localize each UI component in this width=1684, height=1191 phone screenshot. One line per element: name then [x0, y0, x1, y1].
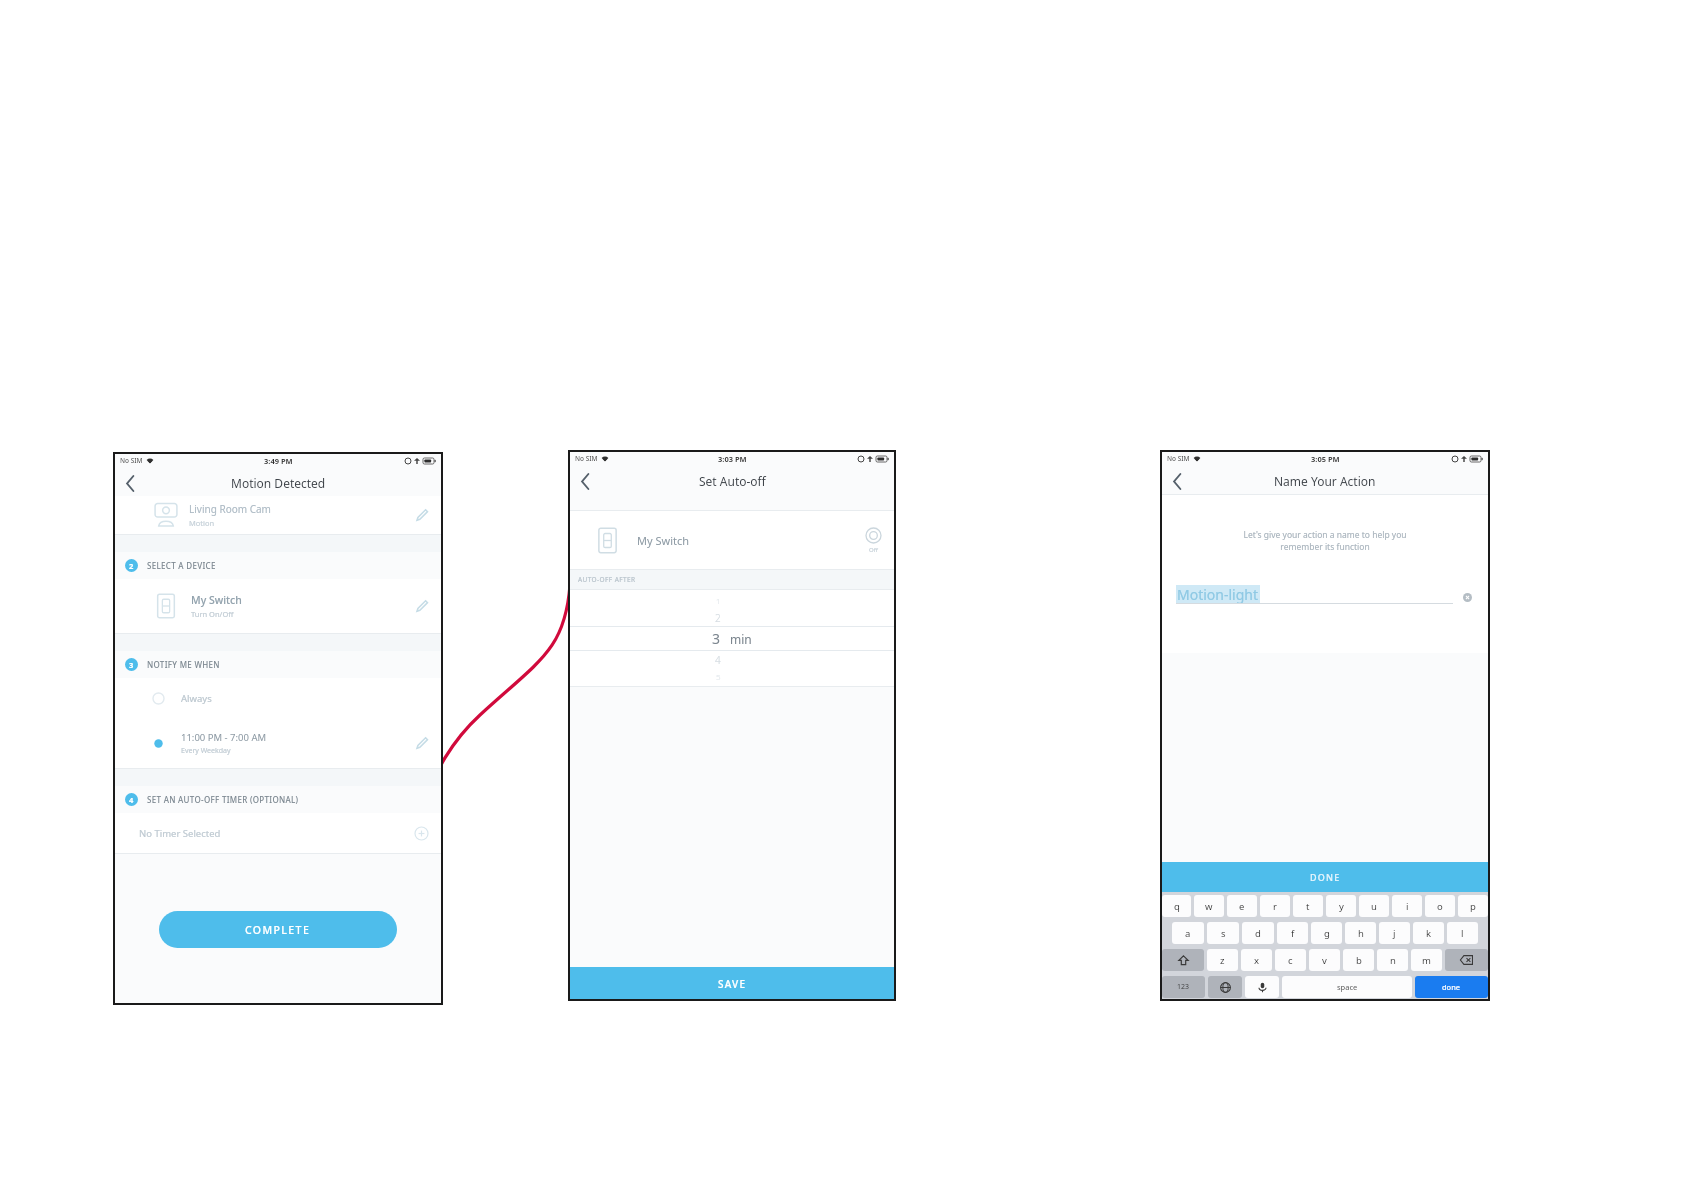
staticText: h	[1358, 927, 1364, 940]
staticText: My Switch	[637, 533, 690, 548]
button[interactable]: b	[1343, 949, 1374, 971]
button[interactable]: Shift	[1162, 949, 1204, 971]
button[interactable]: Back	[117, 470, 143, 496]
button[interactable]: f	[1277, 922, 1308, 944]
button[interactable]: Always	[153, 678, 433, 718]
button[interactable]: s	[1207, 922, 1239, 944]
staticText: 4	[715, 653, 721, 667]
button[interactable]: y	[1326, 895, 1356, 917]
button[interactable]: n	[1377, 949, 1408, 971]
staticText: No Timer Selected	[139, 827, 221, 840]
button[interactable]: c	[1275, 949, 1306, 971]
button[interactable]: Clear text	[1461, 591, 1474, 604]
staticText: t	[1306, 900, 1310, 913]
button[interactable]: k	[1413, 922, 1444, 944]
staticText: My Switch	[191, 593, 242, 607]
staticText: n	[1390, 954, 1396, 967]
staticText: SAVE	[718, 977, 747, 991]
button[interactable]: i	[1392, 895, 1422, 917]
button[interactable]: Motion-light	[1176, 585, 1474, 604]
button[interactable]: u	[1359, 895, 1389, 917]
button[interactable]: Change keyboard	[1208, 976, 1242, 998]
button[interactable]: Delete	[1445, 949, 1488, 971]
button[interactable]: r	[1260, 895, 1290, 917]
staticText: f	[1291, 927, 1295, 940]
button[interactable]: l	[1447, 922, 1478, 944]
button[interactable]: h	[1345, 922, 1376, 944]
staticText: g	[1324, 927, 1330, 940]
staticText: Always	[181, 692, 212, 705]
button[interactable]: COMPLETE	[159, 911, 397, 948]
staticText: i	[1406, 900, 1409, 913]
button[interactable]: p	[1458, 895, 1488, 917]
button[interactable]: Back	[1164, 468, 1190, 494]
button[interactable]: Living Room Cam	[153, 496, 433, 534]
staticText: 3:49 PM	[264, 456, 293, 466]
staticText: q	[1174, 900, 1180, 913]
button[interactable]: Dictation	[1245, 976, 1279, 998]
button[interactable]: Edit	[411, 595, 433, 617]
staticText: 11:00 PM - 7:00 AM	[181, 731, 267, 744]
button[interactable]: q	[1162, 895, 1191, 917]
staticText: 5	[716, 671, 721, 682]
staticText: o	[1437, 900, 1443, 913]
button[interactable]: No Timer Selected	[139, 813, 429, 853]
staticText: 3:05 PM	[1311, 454, 1340, 464]
button[interactable]: Edit	[411, 732, 433, 754]
staticText: No SIM	[120, 456, 143, 465]
staticText: 123	[1177, 982, 1190, 992]
button[interactable]: DONE	[1160, 862, 1490, 892]
staticText: m	[1422, 954, 1431, 967]
staticText: Motion-light	[1177, 585, 1259, 604]
button[interactable]: Numbers	[1162, 976, 1205, 998]
button[interactable]: t	[1293, 895, 1323, 917]
staticText: Set Auto-off	[699, 473, 766, 489]
staticText: w	[1205, 900, 1213, 913]
staticText: b	[1356, 954, 1362, 967]
staticText: k	[1426, 927, 1432, 940]
staticText: DONE	[1310, 871, 1341, 883]
button[interactable]: My Switch	[594, 511, 882, 569]
staticText: 4	[129, 795, 134, 805]
button[interactable]: o	[1425, 895, 1455, 917]
staticText: min	[730, 631, 752, 647]
staticText: r	[1273, 900, 1277, 913]
staticText: done	[1442, 982, 1461, 992]
button[interactable]: z	[1207, 949, 1238, 971]
button[interactable]: My Switch	[153, 579, 433, 633]
staticText: 3:03 PM	[718, 454, 747, 464]
staticText: Motion	[189, 518, 215, 528]
staticText: j	[1393, 927, 1396, 940]
staticText: 3	[712, 629, 721, 648]
staticText: Name Your Action	[1274, 473, 1376, 489]
button[interactable]: v	[1309, 949, 1340, 971]
staticText: space	[1337, 982, 1358, 992]
button[interactable]: 11:00 PM - 7:00 AM	[153, 718, 433, 768]
button[interactable]: e	[1227, 895, 1257, 917]
staticText: No SIM	[1167, 454, 1190, 463]
staticText: Turn On/Off	[191, 609, 234, 619]
button[interactable]: SAVE	[568, 967, 896, 1001]
button[interactable]: done	[1415, 976, 1488, 998]
button[interactable]: space	[1282, 976, 1412, 998]
button[interactable]: m	[1411, 949, 1442, 971]
staticText: s	[1221, 927, 1226, 940]
staticText: d	[1255, 927, 1261, 940]
staticText: y	[1339, 900, 1344, 913]
button[interactable]: Add timer	[414, 826, 429, 841]
button[interactable]: w	[1194, 895, 1224, 917]
staticText: c	[1288, 954, 1293, 967]
staticText: AUTO-OFF AFTER	[578, 575, 636, 584]
button[interactable]: Back	[572, 468, 598, 494]
button[interactable]: j	[1379, 922, 1410, 944]
staticText: Every Weekday	[181, 746, 231, 756]
button[interactable]: Edit	[411, 504, 433, 526]
staticText: SET AN AUTO-OFF TIMER (OPTIONAL)	[147, 794, 299, 805]
button[interactable]: d	[1242, 922, 1274, 944]
staticText: l	[1461, 927, 1464, 940]
button[interactable]: a	[1172, 922, 1204, 944]
staticText: e	[1239, 900, 1245, 913]
button[interactable]: g	[1311, 922, 1342, 944]
button[interactable]: x	[1241, 949, 1272, 971]
staticText: x	[1254, 954, 1260, 967]
